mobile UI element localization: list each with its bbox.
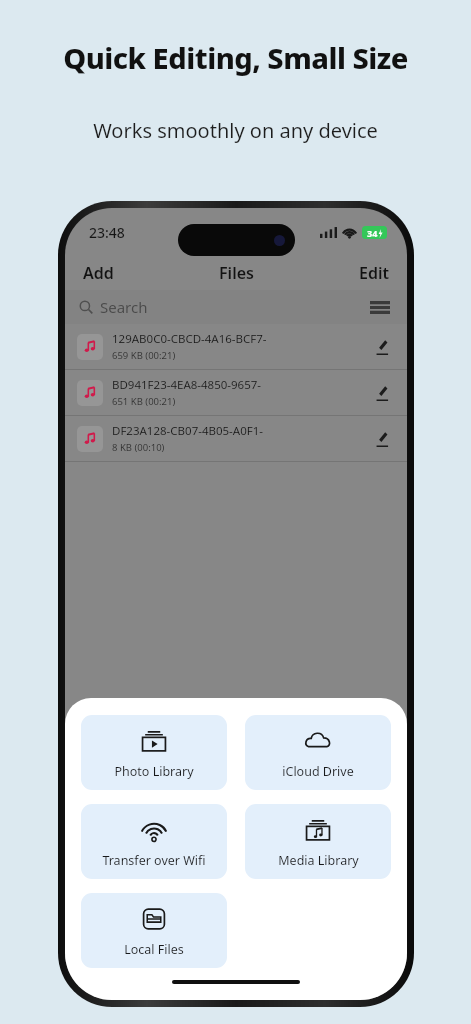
button[interactable]: iCloud Drive bbox=[245, 715, 391, 790]
button[interactable]: Photo Library bbox=[81, 715, 227, 790]
button[interactable]: Local Files bbox=[81, 893, 227, 968]
staticText: iCloud Drive bbox=[282, 763, 354, 780]
button[interactable]: Edit bbox=[359, 262, 389, 284]
staticText: Transfer over Wifi bbox=[102, 852, 206, 869]
staticText: 34 bbox=[367, 227, 378, 239]
staticText: Works smoothly on any device bbox=[0, 117, 471, 144]
staticText: Media Library bbox=[278, 852, 359, 869]
button[interactable]: Search bbox=[65, 290, 407, 324]
button[interactable]: Edit file bbox=[369, 426, 395, 452]
button[interactable]: 129AB0C0-CBCD-4A16-BCF7-CC2AA4A14CB7.m4a bbox=[65, 324, 407, 369]
staticText: 8 KB (00:10) bbox=[112, 441, 165, 454]
staticText: DF23A128-CB07-4B05-A0F1-B13161F9EA90.m4a bbox=[112, 423, 363, 439]
button[interactable]: Transfer over Wifi bbox=[81, 804, 227, 879]
button[interactable]: Menu bbox=[367, 294, 393, 320]
staticText: 129AB0C0-CBCD-4A16-BCF7-CC2AA4A14CB7.m4a bbox=[112, 331, 363, 347]
staticText: Local Files bbox=[124, 941, 184, 958]
button[interactable]: Media Library bbox=[245, 804, 391, 879]
staticText: Search bbox=[100, 297, 148, 317]
staticText: Quick Editing, Small Size bbox=[0, 38, 471, 77]
button[interactable]: BD941F23-4EA8-4850-9657-A7F8C4BA8CA4.m4a bbox=[65, 370, 407, 415]
button[interactable]: Add bbox=[83, 262, 114, 284]
staticText: 651 KB (00:21) bbox=[112, 395, 176, 408]
staticText: Photo Library bbox=[114, 763, 194, 780]
button[interactable]: Edit file bbox=[369, 334, 395, 360]
staticText: BD941F23-4EA8-4850-9657-A7F8C4BA8CA4.m4a bbox=[112, 377, 363, 393]
staticText: 23:48 bbox=[89, 223, 125, 242]
staticText: 659 KB (00:21) bbox=[112, 349, 176, 362]
staticText: Files bbox=[219, 262, 254, 284]
button[interactable]: Edit file bbox=[369, 380, 395, 406]
button[interactable]: DF23A128-CB07-4B05-A0F1-B13161F9EA90.m4a bbox=[65, 416, 407, 461]
